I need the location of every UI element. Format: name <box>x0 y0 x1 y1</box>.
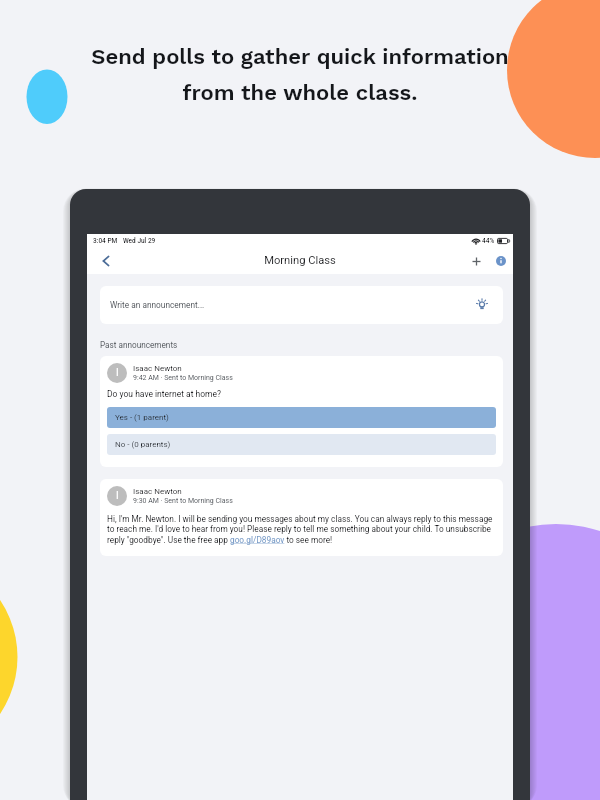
staticText: No - (0 parents) <box>115 440 171 449</box>
staticText: 9:42 AM · Sent to Morning Class <box>133 374 233 382</box>
button[interactable]: Write an announcement... <box>100 286 503 324</box>
staticText: Wed Jul 29 <box>123 237 156 245</box>
staticText: Morning Class <box>87 254 513 267</box>
staticText: Isaac Newton <box>133 364 182 373</box>
staticText: Yes - (1 parent) <box>115 413 169 422</box>
staticText: Do you have internet at home? <box>107 389 222 399</box>
staticText: I <box>116 490 119 502</box>
button[interactable]: I <box>100 479 503 556</box>
button[interactable]: Suggestions <box>475 298 489 312</box>
staticText: Write an announcement... <box>110 300 205 310</box>
staticText: Past announcements <box>100 340 178 350</box>
button[interactable]: No - (0 parents) <box>107 434 496 455</box>
staticText: Isaac Newton <box>133 487 182 496</box>
button[interactable]: Class information <box>488 248 514 274</box>
button[interactable]: Back <box>93 248 119 274</box>
staticText: Hi, I'm Mr. Newton. I will be sending yo… <box>107 514 499 545</box>
staticText: I <box>116 367 119 379</box>
staticText: 3:04 PM <box>93 237 118 245</box>
staticText: 44% <box>482 237 495 245</box>
button[interactable]: I <box>100 356 503 467</box>
staticText: Send polls to gather quick information f… <box>0 44 600 105</box>
staticText: 9:30 AM · Sent to Morning Class <box>133 497 233 505</box>
button[interactable]: Yes - (1 parent) <box>107 407 496 428</box>
button[interactable]: Add announcement <box>463 248 489 274</box>
